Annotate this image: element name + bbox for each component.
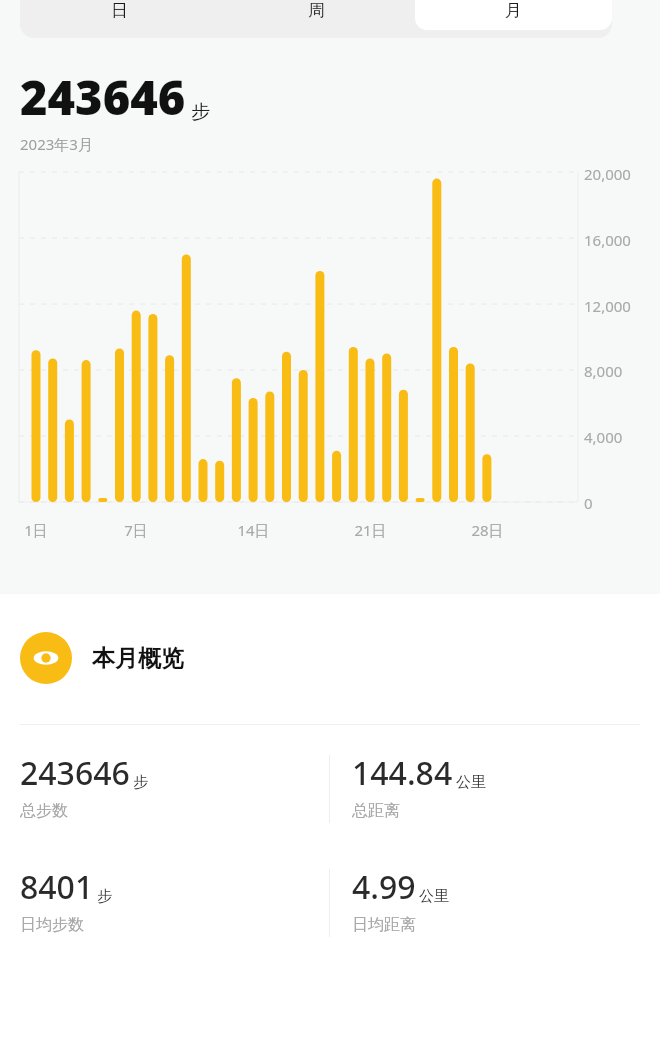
- staticText: 7日: [124, 520, 148, 540]
- staticText: 1日: [24, 520, 48, 540]
- staticText: 144.84: [352, 751, 453, 795]
- staticText: 12,000: [584, 296, 631, 315]
- staticText: 28日: [471, 520, 504, 540]
- staticText: 本月概览: [92, 644, 184, 673]
- staticText: 243646: [20, 65, 186, 129]
- staticText: 总距离: [352, 801, 400, 821]
- staticText: 16,000: [584, 230, 631, 249]
- staticText: 公里: [456, 773, 486, 792]
- button[interactable]: 月: [415, 0, 612, 30]
- staticText: 4.99: [352, 865, 416, 909]
- staticText: 8401: [20, 865, 94, 909]
- button[interactable]: 周: [218, 0, 415, 30]
- staticText: 步: [191, 100, 210, 124]
- staticText: 4,000: [584, 427, 623, 446]
- staticText: 8,000: [584, 361, 623, 380]
- staticText: 月: [505, 0, 522, 21]
- staticText: 日: [111, 0, 128, 21]
- button[interactable]: 本月概览: [20, 632, 660, 684]
- staticText: 周: [308, 0, 325, 21]
- staticText: 公里: [419, 887, 449, 906]
- staticText: 20,000: [584, 164, 631, 183]
- staticText: 日均距离: [352, 915, 416, 935]
- staticText: 243646: [20, 751, 130, 795]
- staticText: 步: [97, 887, 112, 906]
- staticText: 总步数: [20, 801, 68, 821]
- staticText: 步: [133, 773, 148, 792]
- staticText: 2023年3月: [20, 134, 93, 154]
- staticText: 日均步数: [20, 915, 84, 935]
- staticText: 0: [584, 493, 593, 512]
- staticText: 21日: [354, 520, 387, 540]
- staticText: 14日: [237, 520, 270, 540]
- button[interactable]: 日: [20, 0, 218, 30]
